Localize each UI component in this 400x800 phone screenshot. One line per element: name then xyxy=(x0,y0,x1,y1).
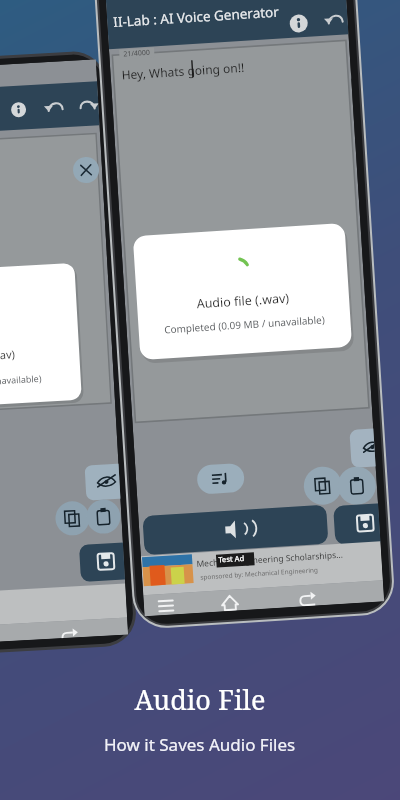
button[interactable]: Audio File feature screen xyxy=(0,0,400,800)
